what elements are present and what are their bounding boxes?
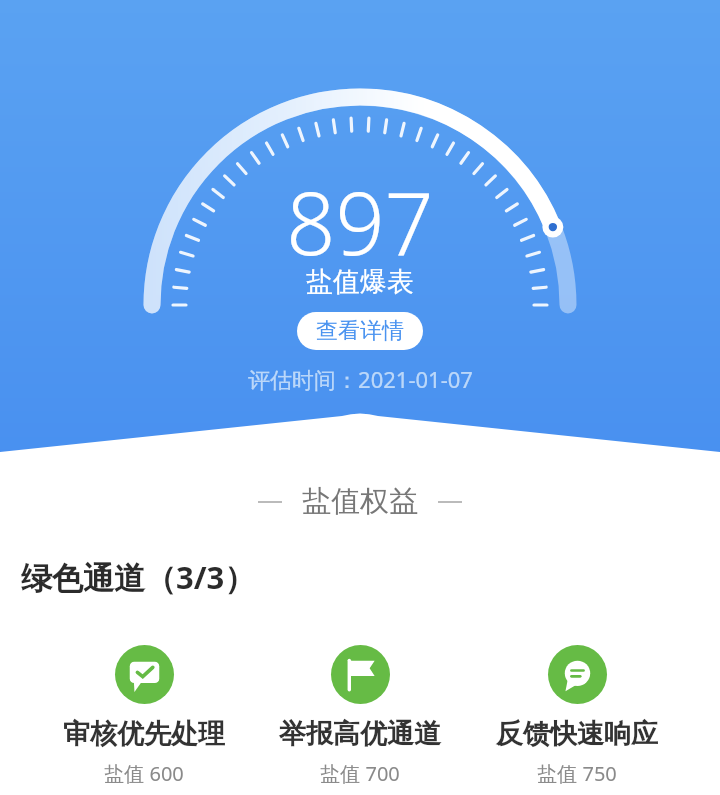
staticText: 盐值 700 — [320, 760, 400, 787]
button[interactable]: 查看详情 — [297, 312, 423, 350]
staticText: 绿色通道（3/3） — [21, 556, 256, 598]
staticText: 反馈快速响应 — [496, 717, 658, 751]
staticText: 盐值权益 — [302, 483, 418, 520]
staticText: 盐值 600 — [104, 760, 184, 787]
button[interactable]: 审核优先处理 — [59, 645, 229, 787]
staticText: 审核优先处理 — [63, 717, 225, 751]
button[interactable]: 反馈快速响应 — [492, 645, 662, 787]
staticText: 盐值 750 — [537, 760, 617, 787]
staticText: 评估时间：2021-01-07 — [248, 364, 473, 394]
staticText: 897 — [286, 163, 434, 280]
staticText: 查看详情 — [316, 317, 404, 345]
staticText: 举报高优通道 — [279, 717, 441, 751]
button[interactable]: 举报高优通道 — [275, 645, 445, 787]
staticText: 盐值爆表 — [306, 265, 414, 299]
